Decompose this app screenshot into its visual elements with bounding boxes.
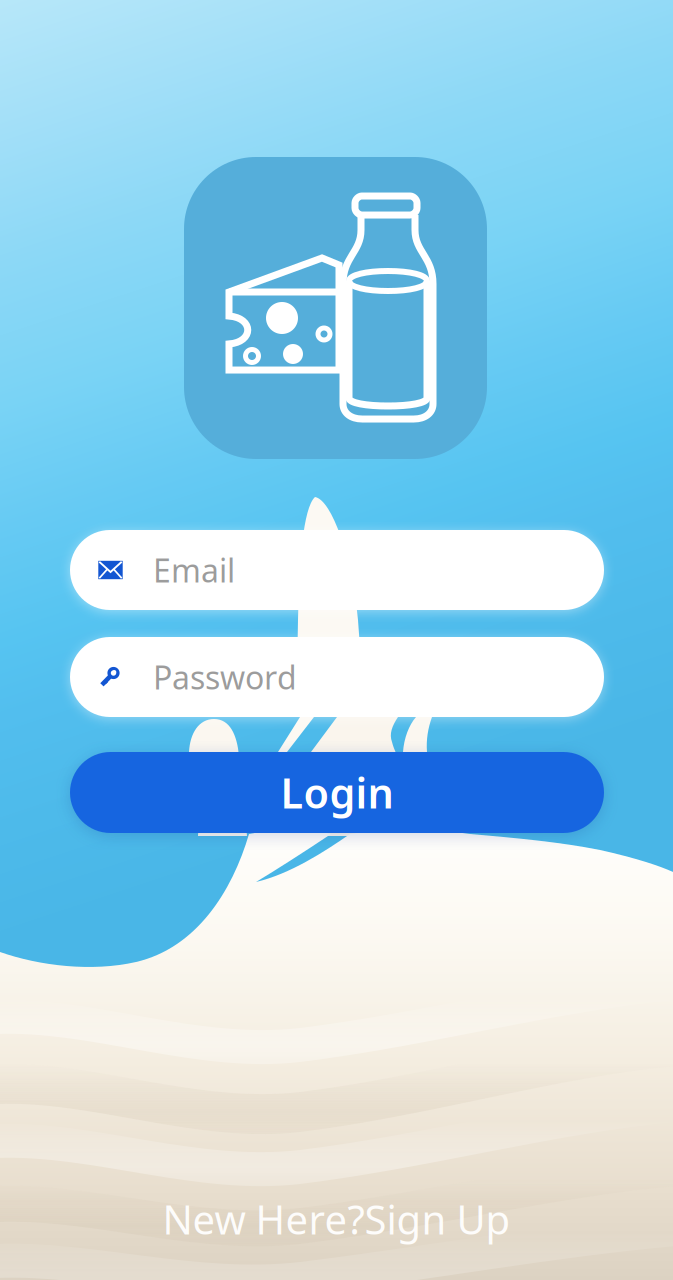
staticText: Password: [153, 656, 297, 698]
button[interactable]: Email: [70, 530, 604, 610]
button[interactable]: Login: [70, 752, 604, 833]
button[interactable]: New Here?Sign Up: [162, 1192, 510, 1245]
staticText: New Here?Sign Up: [162, 1192, 510, 1245]
staticText: Email: [153, 549, 235, 591]
staticText: Login: [280, 765, 393, 820]
button[interactable]: Password: [70, 637, 604, 717]
